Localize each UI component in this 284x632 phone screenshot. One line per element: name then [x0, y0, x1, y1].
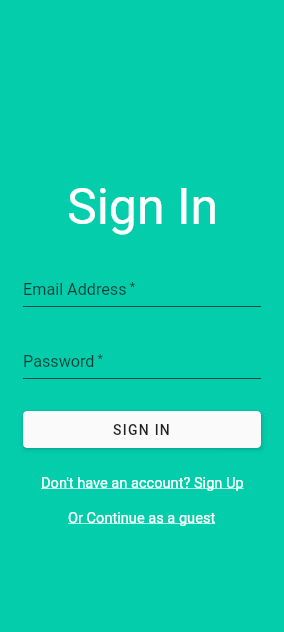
staticText: SIGN IN — [113, 422, 172, 438]
staticText: Email Address * — [23, 279, 136, 299]
staticText: Sign In — [67, 178, 219, 237]
button[interactable]: Don't have an account? Sign Up — [41, 474, 244, 491]
button[interactable]: Or Continue as a guest — [68, 509, 216, 526]
button[interactable]: SIGN IN — [23, 411, 261, 448]
button[interactable]: Email Address * — [23, 279, 261, 307]
button[interactable]: Password * — [23, 351, 261, 379]
staticText: Password * — [23, 351, 103, 371]
